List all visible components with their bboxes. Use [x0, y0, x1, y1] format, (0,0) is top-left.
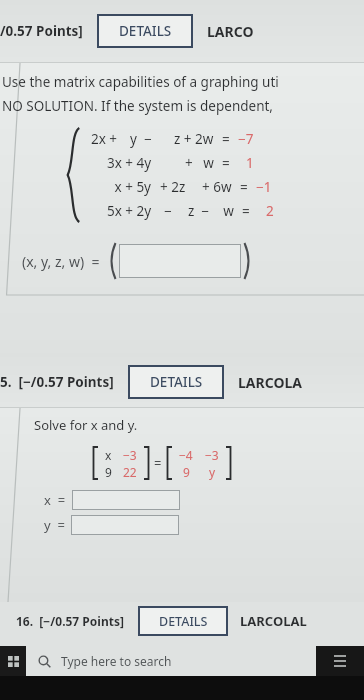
staticText: −1 [256, 178, 272, 196]
staticText: y [209, 464, 216, 480]
button[interactable]: System tray [316, 646, 364, 676]
button[interactable]: DETAILS [97, 14, 193, 48]
staticText: DETAILS [119, 22, 172, 40]
staticText: 5x + 2y [107, 202, 152, 220]
staticText: −3 [205, 447, 219, 463]
staticText: −4 [179, 447, 193, 463]
staticText: x [105, 447, 112, 463]
staticText: Use the matrix capabilities of a graphin… [2, 73, 279, 91]
staticText: = [154, 454, 162, 472]
staticText: 2 [266, 202, 274, 220]
staticText: y = [44, 516, 65, 534]
button[interactable]: DETAILS [128, 365, 224, 399]
staticText: /0.57 Points] [0, 22, 83, 40]
staticText: x = [44, 491, 66, 509]
staticText: LARCOLAL [240, 612, 307, 630]
staticText: = [222, 130, 230, 148]
staticText: (x, y, z, w) = [22, 252, 100, 271]
staticText: −7 [238, 130, 254, 148]
staticText: − [164, 202, 172, 220]
button[interactable]: Start [0, 646, 26, 676]
staticText: y − [130, 130, 152, 148]
staticText: NO SOLUTION. If the system is dependent, [2, 97, 273, 115]
staticText: = [242, 202, 250, 220]
staticText: Type here to search [61, 653, 172, 669]
button[interactable] [72, 490, 180, 510]
button[interactable] [71, 515, 179, 535]
staticText: x + 5y [111, 178, 152, 196]
staticText: 3x + 4y [107, 154, 152, 172]
staticText: 22 [123, 464, 137, 480]
staticText: z + 2w [174, 130, 214, 148]
staticText: 5. [−/0.57 Points] [0, 373, 114, 391]
staticText: −3 [123, 447, 137, 463]
staticText: DETAILS [150, 373, 203, 391]
button[interactable] [119, 244, 241, 278]
staticText: LARCOLA [238, 373, 302, 392]
staticText: z − w [188, 202, 234, 220]
staticText: LARCO [207, 22, 254, 41]
button[interactable]: Type here to search [26, 646, 316, 676]
staticText: = [240, 178, 248, 196]
staticText: + w [185, 154, 214, 172]
staticText: DETAILS [159, 613, 208, 630]
staticText: 9 [183, 464, 190, 480]
staticText: 16. [−/0.57 Points] [16, 613, 124, 629]
staticText: + 6w [202, 178, 232, 196]
staticText: 1 [246, 154, 254, 172]
staticText: + 2z [160, 178, 186, 196]
staticText: Solve for x and y. [34, 416, 138, 434]
staticText: 2x + [91, 130, 118, 148]
button[interactable]: DETAILS [138, 606, 228, 636]
staticText: = [222, 154, 230, 172]
staticText: 9 [105, 464, 112, 480]
